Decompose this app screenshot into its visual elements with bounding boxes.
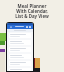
button[interactable] (9, 68, 31, 71)
button[interactable] (9, 33, 31, 38)
button[interactable] (9, 54, 31, 59)
button[interactable] (9, 47, 31, 52)
button[interactable] (9, 40, 31, 45)
button[interactable] (7, 29, 33, 32)
button[interactable]: Search (26, 26, 28, 28)
staticText: Meal Planner With Calendar, List & Day V… (15, 3, 49, 19)
button[interactable]: More options (29, 26, 31, 28)
button[interactable]: Menu (9, 25, 12, 28)
button[interactable]: Meal Planner With Calendar, List & Day V… (5, 3, 59, 19)
button[interactable] (9, 61, 31, 66)
